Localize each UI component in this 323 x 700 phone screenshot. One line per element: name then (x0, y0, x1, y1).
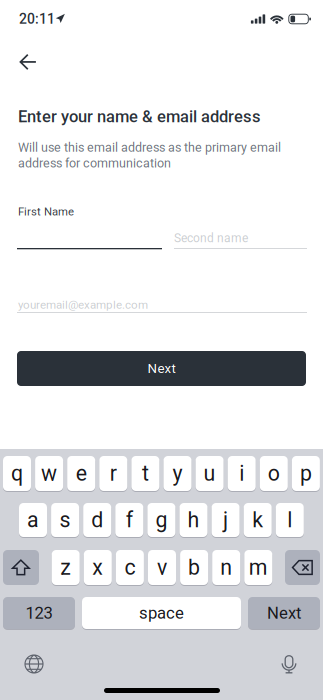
button[interactable]: j (212, 503, 240, 537)
staticText: c (124, 555, 135, 580)
staticText: q (11, 461, 23, 486)
staticText: p (300, 461, 312, 486)
staticText: Next (267, 603, 301, 623)
staticText: m (249, 555, 268, 580)
staticText: y (172, 461, 182, 486)
button[interactable]: l (276, 503, 304, 537)
button[interactable]: Dictate (267, 644, 311, 684)
staticText: youremail@example.com (18, 298, 148, 312)
staticText: First Name (18, 205, 74, 218)
button[interactable]: i (228, 456, 256, 491)
staticText: l (287, 507, 292, 532)
staticText: Enter your name & email address (18, 107, 261, 126)
button[interactable]: v (148, 550, 176, 585)
staticText: j (223, 507, 228, 532)
button[interactable]: 123 (3, 597, 75, 629)
button[interactable]: o (260, 456, 288, 491)
staticText: t (142, 461, 149, 486)
staticText: Second name (174, 231, 248, 245)
staticText: e (76, 461, 87, 486)
button[interactable]: x (84, 550, 112, 585)
staticText: g (155, 507, 167, 532)
staticText: i (239, 461, 244, 486)
button[interactable]: f (115, 503, 143, 537)
staticText: u (204, 461, 216, 486)
staticText: w (41, 461, 57, 486)
staticText: f (126, 507, 133, 532)
button[interactable]: r (99, 456, 127, 491)
button[interactable]: d (83, 503, 111, 537)
staticText: s (60, 507, 71, 532)
button[interactable]: a (19, 503, 47, 537)
staticText: Next (147, 361, 175, 376)
button[interactable]: z (52, 550, 80, 585)
button[interactable]: e (67, 456, 95, 491)
staticText: v (157, 555, 167, 580)
staticText: z (60, 555, 71, 580)
button[interactable]: Back (4, 46, 52, 78)
button[interactable]: Next (248, 597, 320, 629)
staticText: o (268, 461, 280, 486)
button[interactable]: b (180, 550, 208, 585)
button[interactable]: Backspace (285, 550, 320, 585)
button[interactable]: k (244, 503, 272, 537)
button[interactable]: y (163, 456, 191, 491)
staticText: x (92, 555, 103, 580)
button[interactable]: n (212, 550, 240, 585)
staticText: n (220, 555, 232, 580)
button[interactable]: h (179, 503, 207, 537)
staticText: b (188, 555, 200, 580)
button[interactable]: Next (17, 351, 306, 386)
staticText: 123 (25, 603, 52, 623)
button[interactable]: q (3, 456, 31, 491)
button[interactable]: c (116, 550, 144, 585)
button[interactable]: u (196, 456, 224, 491)
button[interactable]: g (147, 503, 175, 537)
button[interactable]: m (244, 550, 272, 585)
staticText: Will use this email address as the prima… (18, 140, 281, 171)
button[interactable]: space (82, 597, 241, 629)
button[interactable]: t (131, 456, 159, 491)
staticText: space (139, 603, 184, 623)
button[interactable]: s (51, 503, 79, 537)
staticText: h (187, 507, 199, 532)
staticText: d (91, 507, 103, 532)
button[interactable]: Shift (3, 550, 39, 585)
staticText: r (110, 461, 117, 486)
button[interactable]: w (35, 456, 63, 491)
button[interactable]: Switch keyboard (12, 644, 56, 684)
staticText: 20:11 (19, 11, 55, 27)
staticText: k (252, 507, 263, 532)
button[interactable]: p (292, 456, 320, 491)
staticText: a (27, 507, 39, 532)
